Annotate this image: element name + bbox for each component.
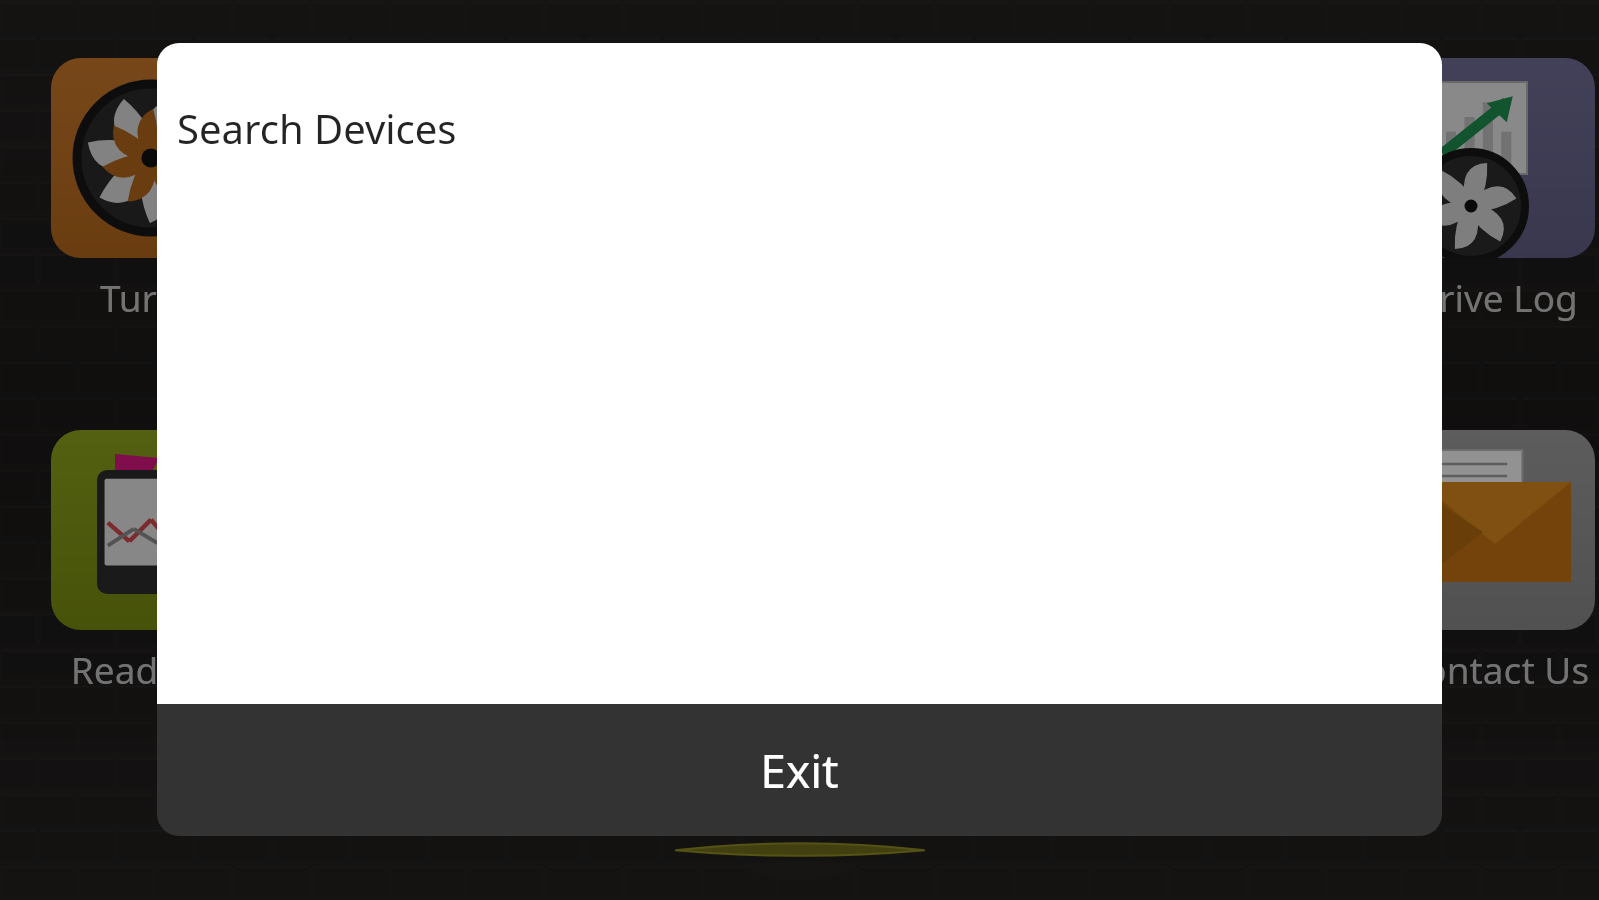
staticText: Search Devices bbox=[177, 101, 457, 155]
staticText: Contact Us bbox=[1390, 644, 1599, 694]
staticText: Turbo bbox=[46, 272, 256, 322]
button[interactable]: Exit bbox=[157, 704, 1442, 836]
staticText: Drive Log bbox=[1390, 272, 1599, 322]
staticText: Readings bbox=[46, 644, 256, 694]
button[interactable]: Readings bbox=[46, 430, 256, 694]
button[interactable]: Turbo bbox=[46, 58, 256, 322]
button[interactable]: Contact Us bbox=[1390, 430, 1599, 694]
button[interactable]: Drive Log bbox=[1390, 58, 1599, 322]
staticText: Exit bbox=[760, 739, 839, 802]
